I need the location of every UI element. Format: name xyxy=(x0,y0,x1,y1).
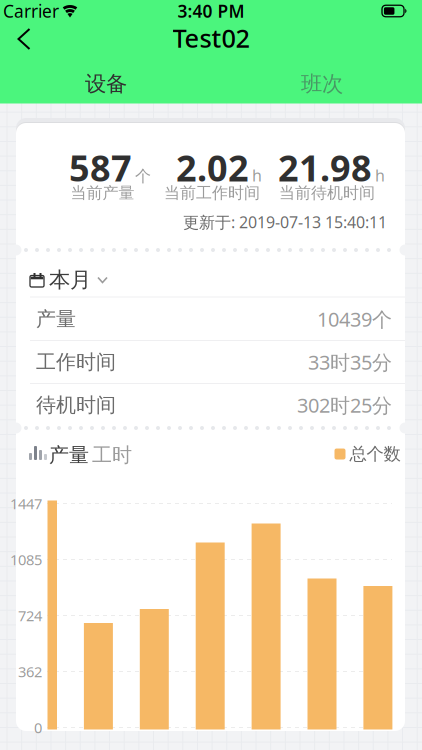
staticText: 工作时间 xyxy=(36,350,116,374)
staticText: 587 xyxy=(69,144,132,191)
staticText: 302时25分 xyxy=(297,392,392,418)
staticText: 本月 xyxy=(49,267,91,293)
staticText: h xyxy=(252,165,262,186)
staticText: 1447 xyxy=(10,494,42,513)
staticText: Carrier xyxy=(3,0,59,22)
staticText: 产量 xyxy=(49,443,89,467)
staticText: 产量 xyxy=(36,307,76,331)
button[interactable]: 产量 xyxy=(45,439,93,471)
staticText: 当前待机时间 xyxy=(279,183,375,203)
button[interactable]: 设备 xyxy=(1,65,211,103)
staticText: 总个数 xyxy=(349,443,400,465)
staticText: 当前产量 xyxy=(70,183,134,203)
button[interactable]: 工时 xyxy=(88,439,136,471)
button[interactable]: Back xyxy=(8,19,39,59)
staticText: h xyxy=(375,165,385,186)
staticText: Test02 xyxy=(172,21,249,55)
staticText: 1085 xyxy=(10,550,42,569)
staticText: 2.02 xyxy=(176,144,249,191)
staticText: 33时35分 xyxy=(308,349,392,375)
staticText: 362 xyxy=(18,662,42,681)
staticText: 更新于: 2019-07-13 15:40:11 xyxy=(183,211,387,233)
staticText: 10439个 xyxy=(317,306,392,332)
staticText: 设备 xyxy=(85,71,127,97)
staticText: 当前工作时间 xyxy=(164,183,260,203)
staticText: 待机时间 xyxy=(36,393,116,417)
staticText: 0 xyxy=(34,718,42,737)
button[interactable]: 选择时间范围 xyxy=(26,259,111,301)
staticText: 21.98 xyxy=(278,144,372,191)
staticText: 3:40 PM xyxy=(177,0,244,22)
button[interactable]: 班次 xyxy=(217,65,422,103)
staticText: 个 xyxy=(135,166,151,186)
staticText: 班次 xyxy=(301,71,343,97)
staticText: 工时 xyxy=(92,443,132,467)
staticText: 724 xyxy=(18,606,42,625)
